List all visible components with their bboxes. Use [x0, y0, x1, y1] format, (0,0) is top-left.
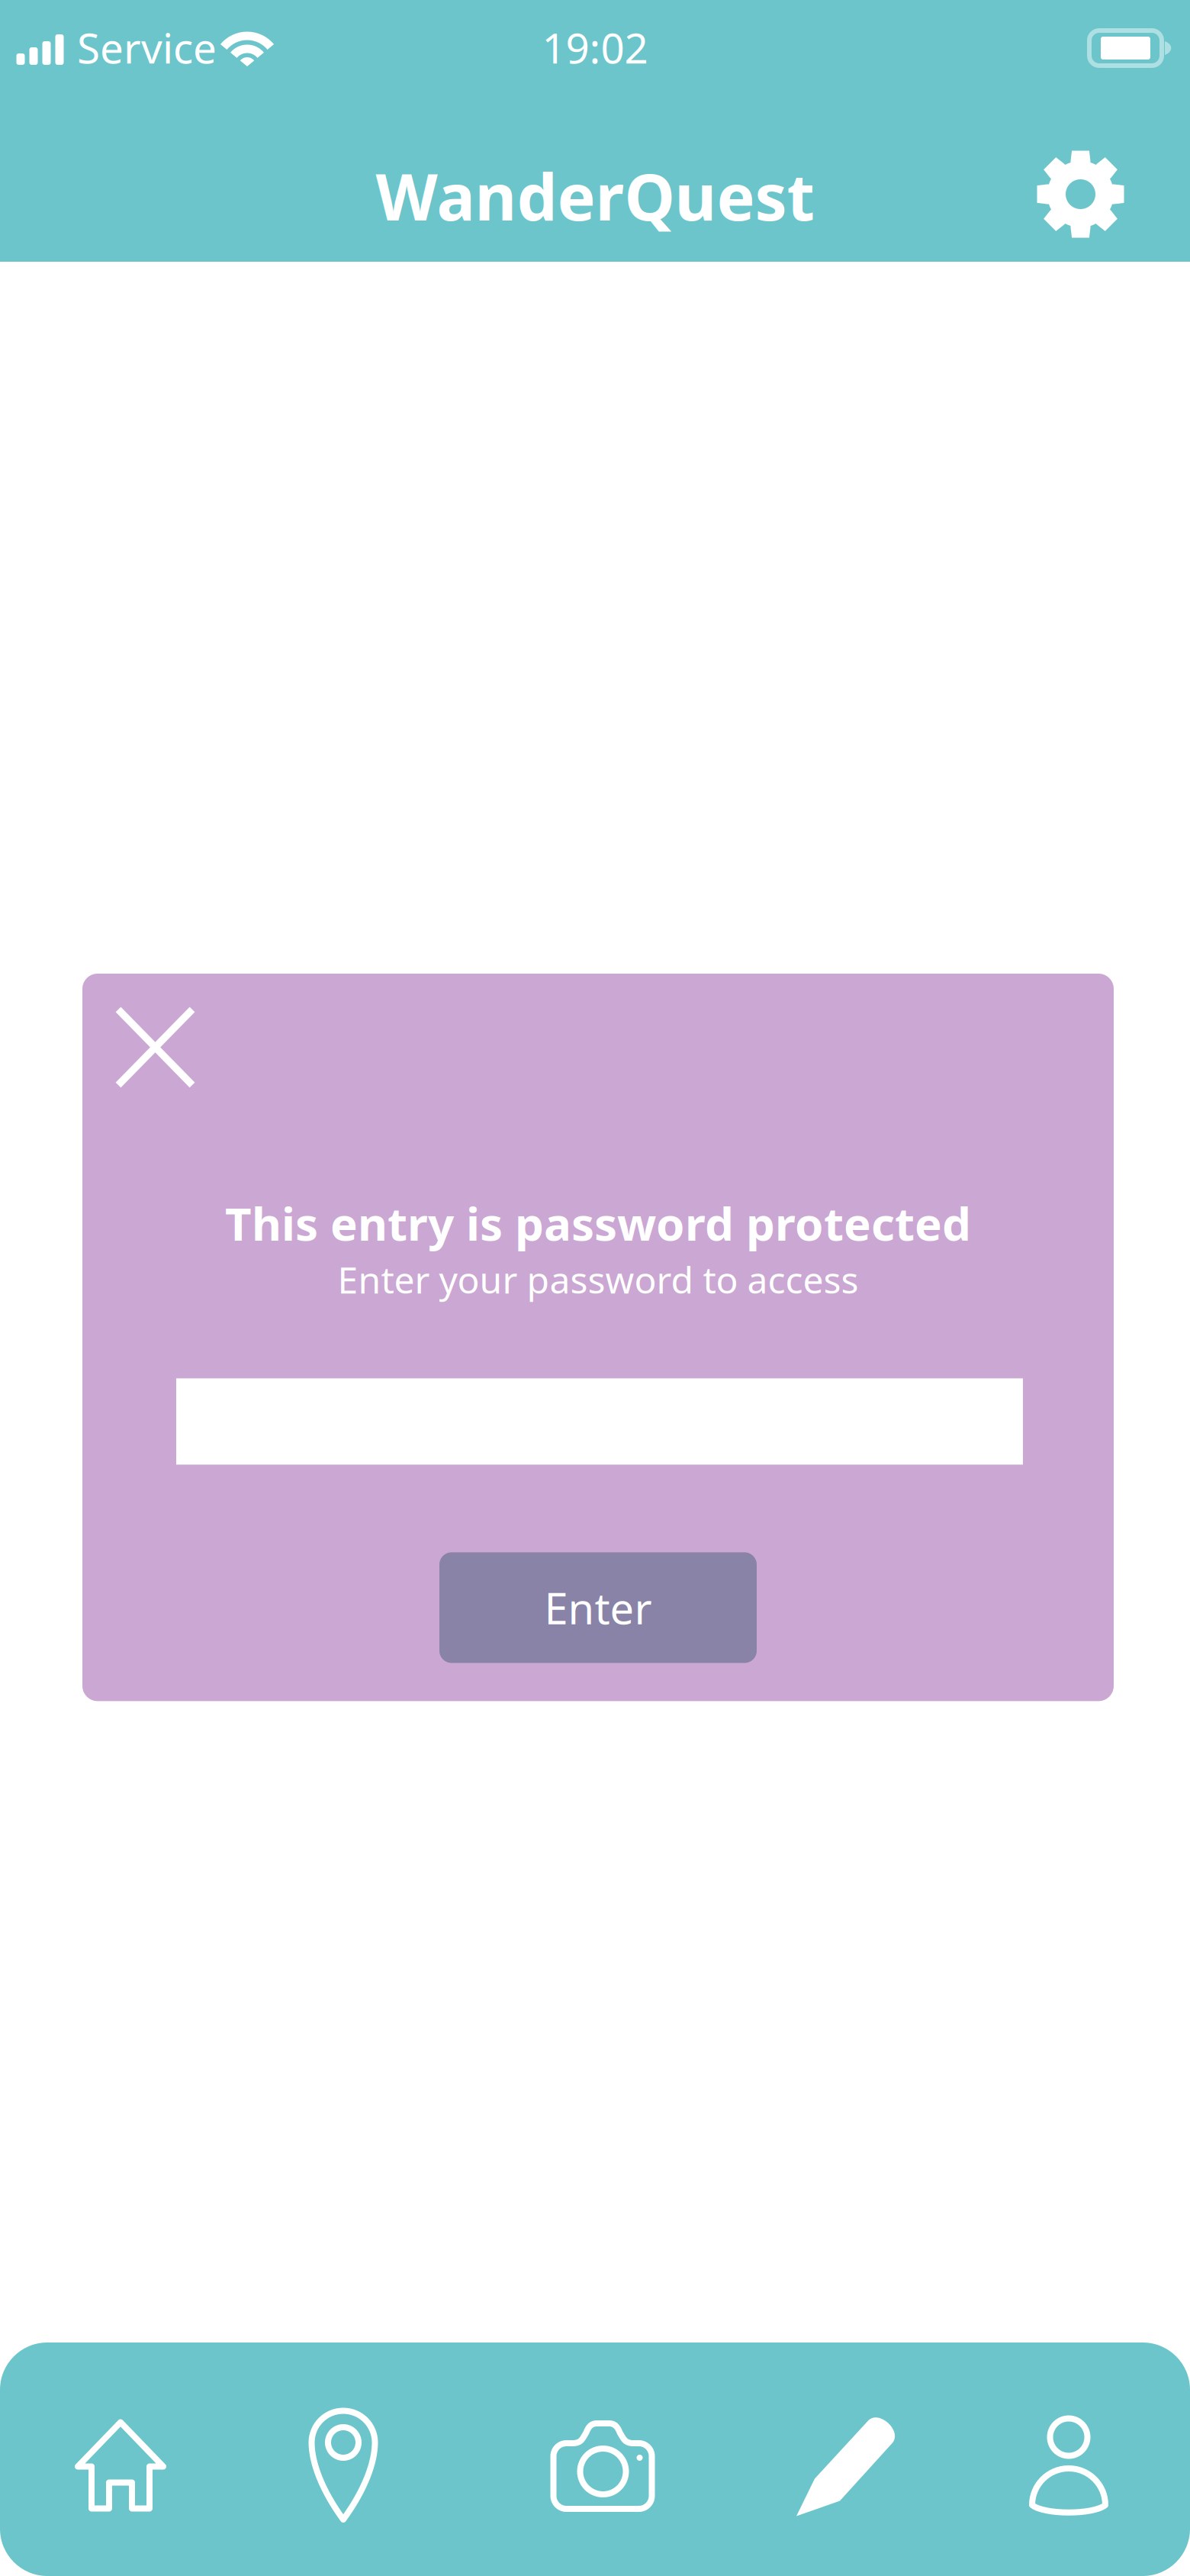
button[interactable]: Enter	[439, 1552, 757, 1663]
staticText: Enter your password to access	[338, 1255, 859, 1304]
staticText: Service	[77, 20, 217, 75]
staticText: WanderQuest	[376, 153, 814, 238]
staticText: This entry is password protected	[225, 1193, 971, 1253]
button[interactable]: Camera	[476, 2343, 714, 2576]
staticText: 19:02	[542, 20, 648, 75]
button[interactable]: Profile	[952, 2343, 1190, 2576]
button[interactable]: Close	[82, 974, 195, 1087]
button[interactable]: Settings	[1034, 129, 1124, 218]
staticText: Enter	[544, 1579, 652, 1636]
button[interactable]: Home	[0, 2343, 238, 2576]
button[interactable]: Map	[238, 2343, 476, 2576]
button[interactable]: Compose	[714, 2343, 952, 2576]
